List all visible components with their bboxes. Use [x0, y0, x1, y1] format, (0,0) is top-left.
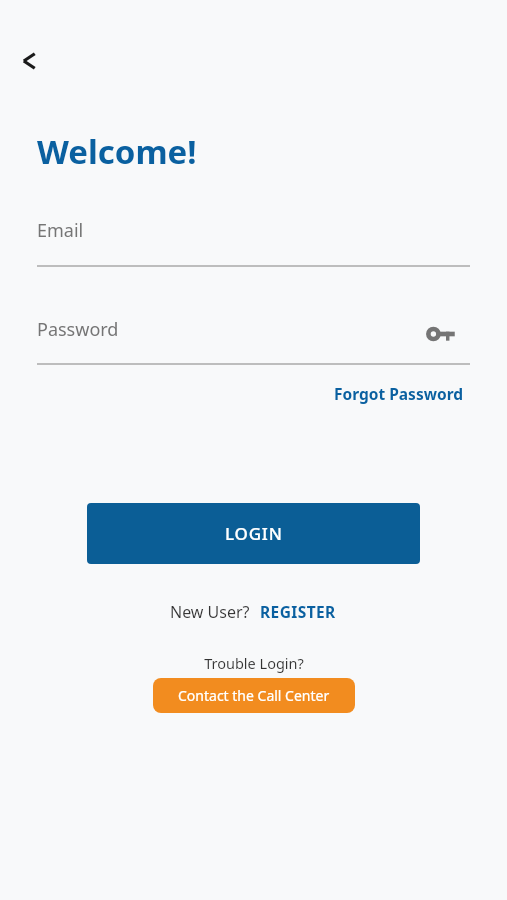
- button[interactable]: Forgot Password: [330, 380, 468, 407]
- button[interactable]: Back: [6, 38, 52, 84]
- button[interactable]: LOGIN: [87, 503, 420, 564]
- button[interactable]: Contact the Call Center: [153, 678, 355, 713]
- staticText: Password: [37, 317, 119, 342]
- staticText: Contact the Call Center: [178, 686, 330, 705]
- staticText: REGISTER: [260, 601, 336, 622]
- staticText: Forgot Password: [334, 383, 464, 404]
- staticText: Trouble Login?: [204, 653, 304, 673]
- staticText: New User?: [170, 601, 250, 623]
- staticText: Email: [37, 218, 84, 243]
- staticText: Welcome!: [37, 129, 197, 174]
- button[interactable]: REGISTER: [258, 598, 338, 625]
- staticText: LOGIN: [225, 522, 283, 545]
- button[interactable]: Show password: [418, 312, 462, 356]
